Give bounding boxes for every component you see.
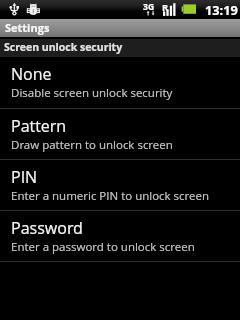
staticText: Draw pattern to unlock screen xyxy=(11,137,173,153)
staticText: 3G xyxy=(143,1,155,13)
staticText: Password xyxy=(11,217,83,239)
staticText: Enter a password to unlock screen xyxy=(11,239,195,255)
staticText: PIN xyxy=(11,166,38,188)
staticText: Pattern xyxy=(11,115,67,137)
staticText: Disable screen unlock security xyxy=(11,85,173,101)
button[interactable]: PIN xyxy=(0,160,240,211)
button[interactable]: Password xyxy=(0,211,240,262)
staticText: Settings xyxy=(5,20,50,35)
staticText: Screen unlock security xyxy=(4,40,123,54)
staticText: None xyxy=(11,63,52,85)
button[interactable]: None xyxy=(0,57,240,108)
button[interactable]: Pattern xyxy=(0,109,240,160)
staticText: R xyxy=(162,1,169,14)
staticText: 13:19 xyxy=(205,1,238,18)
staticText: Enter a numeric PIN to unlock screen xyxy=(11,188,209,204)
